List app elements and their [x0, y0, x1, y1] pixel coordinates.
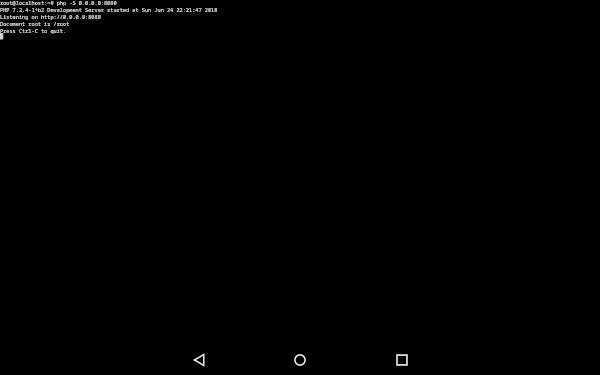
staticText: Listening on http://0.0.0.0:8080: [0, 13, 600, 20]
button[interactable]: Recent apps: [377, 345, 425, 375]
staticText: Press Ctrl-C to quit.: [0, 27, 600, 34]
button[interactable]: Terminal output: [0, 0, 600, 345]
button[interactable]: Back: [175, 345, 223, 375]
staticText: PHP 7.2.4-1+b2 Development Server starte…: [0, 6, 600, 13]
staticText: Document root is /root: [0, 20, 600, 27]
staticText: root@localhost:~# php -S 0.0.0.0:8080: [0, 0, 600, 6]
button[interactable]: Home: [276, 345, 324, 375]
